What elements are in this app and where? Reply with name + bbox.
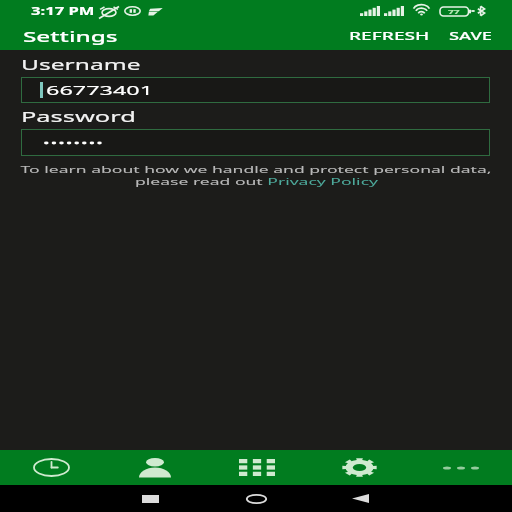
button[interactable]: Person — [103, 450, 206, 485]
button[interactable]: REFRESH — [341, 22, 433, 50]
button[interactable]: SAVE — [441, 22, 499, 50]
staticText: REFRESH — [349, 29, 431, 43]
button[interactable]: Clock — [0, 450, 103, 485]
button[interactable]: Apps — [206, 450, 308, 485]
staticText: please read out Privacy Policy — [135, 175, 378, 187]
button[interactable]: Settings — [308, 450, 410, 485]
button[interactable]: Back — [330, 485, 390, 512]
staticText: To learn about how we handle and protect… — [20, 163, 492, 175]
staticText: Settings — [23, 26, 119, 46]
staticText: Password — [21, 108, 138, 126]
staticText: SAVE — [449, 29, 493, 43]
staticText: Username — [21, 56, 141, 74]
staticText: 3:17 PM — [31, 4, 96, 18]
button[interactable]: More — [410, 450, 512, 485]
staticText: 66773401 — [46, 81, 154, 99]
staticText: 77 — [448, 8, 460, 16]
button[interactable]: 66773401 — [21, 77, 490, 103]
button[interactable] — [21, 129, 490, 156]
button[interactable]: Recents — [120, 485, 180, 512]
button[interactable]: Home — [226, 485, 286, 512]
